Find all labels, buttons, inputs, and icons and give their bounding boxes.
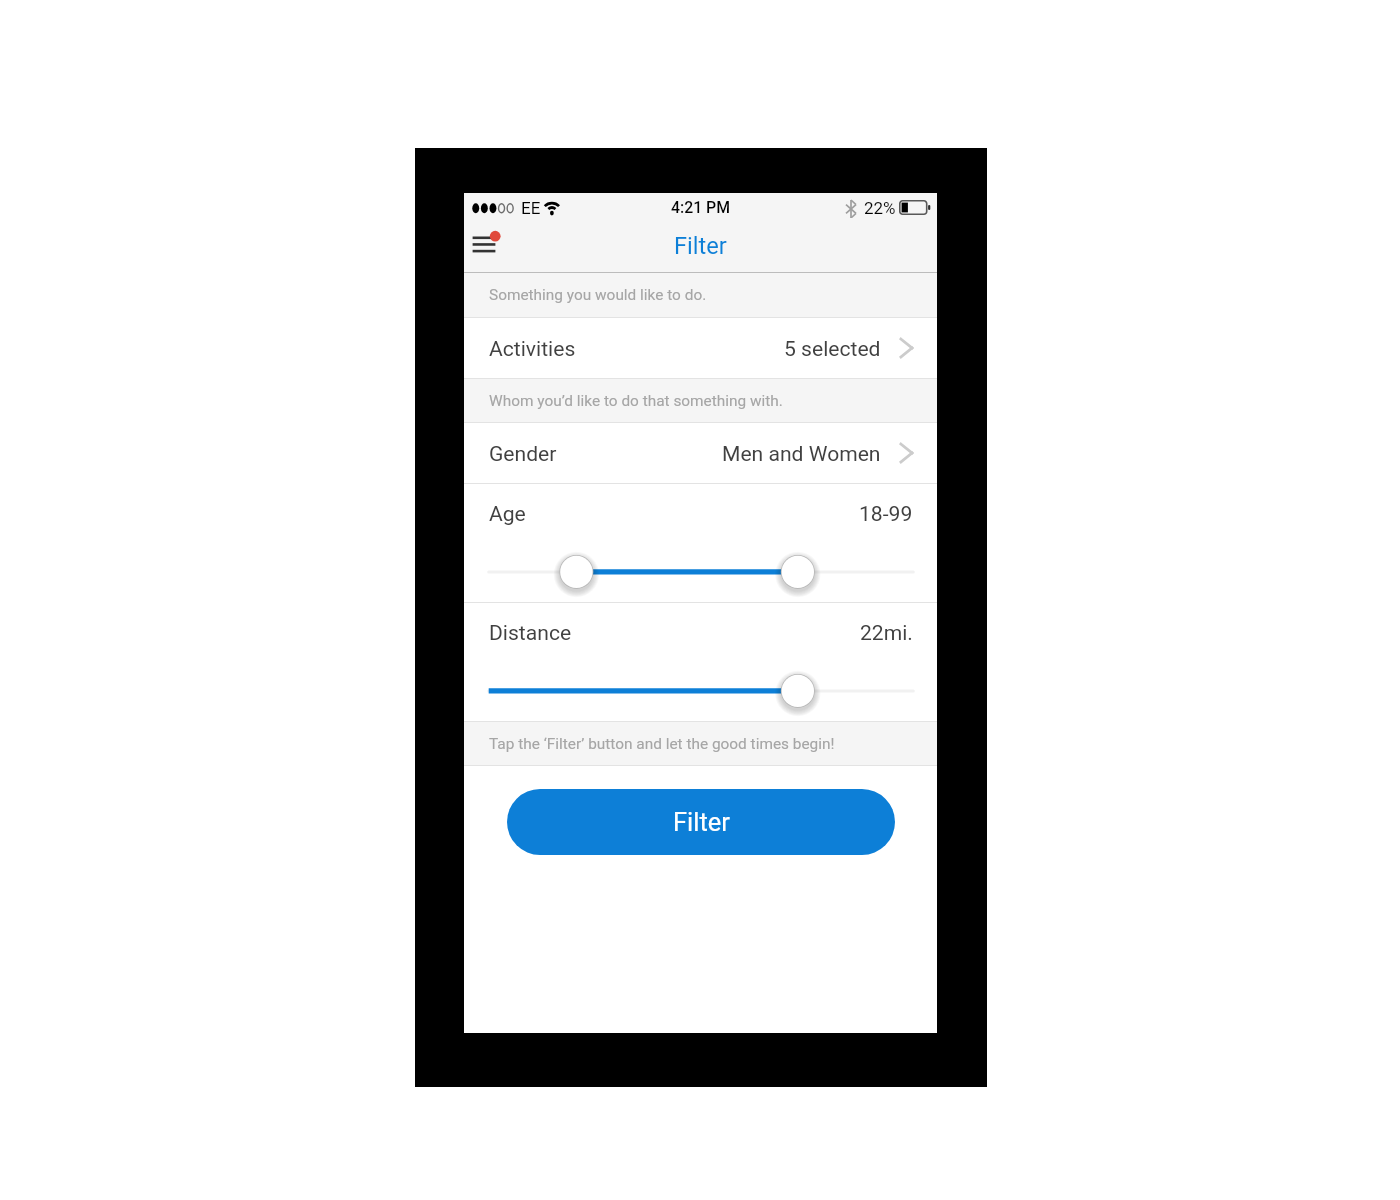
- staticText: Age: [489, 501, 526, 526]
- staticText: Filter: [673, 807, 730, 837]
- staticText: Activities: [489, 336, 576, 361]
- staticText: Distance: [489, 620, 572, 645]
- staticText: EE: [521, 198, 541, 218]
- button[interactable]: Filter: [507, 789, 895, 855]
- staticText: Filter: [674, 232, 727, 260]
- staticText: Whom you’d like to do that something wit…: [489, 392, 783, 410]
- staticText: 22%: [864, 198, 896, 218]
- staticText: 5 selected: [784, 336, 881, 361]
- staticText: Something you would like to do.: [489, 286, 707, 304]
- staticText: Gender: [489, 441, 557, 466]
- button[interactable]: Gender: [464, 423, 937, 483]
- staticText: Tap the ‘Filter’ button and let the good…: [489, 735, 835, 753]
- staticText: 4:21 PM: [671, 198, 730, 217]
- staticText: Men and Women: [722, 441, 881, 466]
- button[interactable]: Activities: [464, 318, 937, 378]
- staticText: 18-99: [859, 501, 913, 526]
- button[interactable]: Menu: [466, 218, 510, 262]
- button[interactable]: Distance slider: [464, 660, 937, 721]
- staticText: 22mi.: [860, 620, 913, 645]
- button[interactable]: Age slider: [464, 541, 937, 602]
